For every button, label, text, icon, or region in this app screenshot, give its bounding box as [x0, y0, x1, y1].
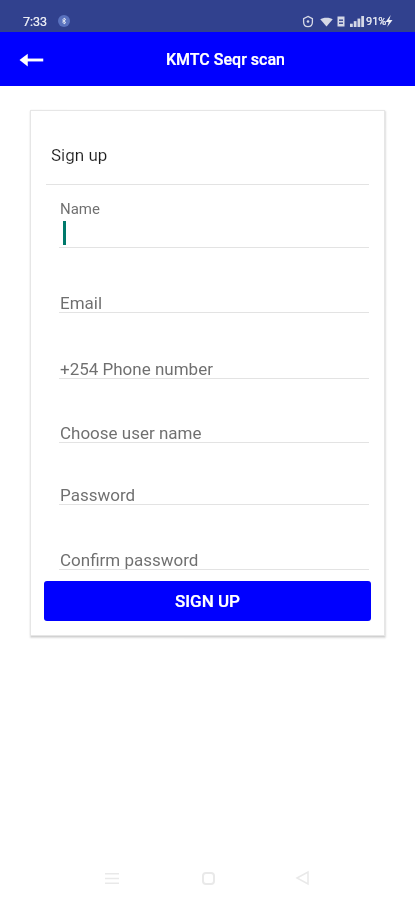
staticText: +254 Phone number	[60, 359, 213, 379]
button[interactable]: Back	[8, 36, 54, 82]
staticText: Password	[60, 485, 136, 505]
staticText: Name	[60, 200, 100, 218]
staticText: KMTC Seqr scan	[166, 50, 285, 69]
button[interactable]: SIGN UP	[44, 581, 371, 621]
button[interactable]: Choose user name	[59, 408, 369, 442]
staticText: 7:33	[23, 14, 48, 29]
button[interactable]: Password	[59, 470, 369, 504]
staticText: Choose user name	[60, 423, 202, 443]
staticText: Sign up	[51, 145, 108, 165]
button[interactable]: +254 Phone number	[59, 344, 369, 378]
button[interactable]: Confirm password	[59, 535, 369, 569]
staticText: Email	[60, 293, 103, 313]
staticText: Confirm password	[60, 550, 199, 570]
button[interactable]: Name	[59, 200, 369, 250]
button[interactable]: Back	[282, 858, 322, 898]
button[interactable]: Home	[188, 858, 228, 898]
button[interactable]: Recent apps	[92, 858, 132, 898]
staticText: 91%	[366, 15, 387, 28]
staticText: SIGN UP	[175, 591, 240, 611]
button[interactable]: Email	[59, 278, 369, 312]
